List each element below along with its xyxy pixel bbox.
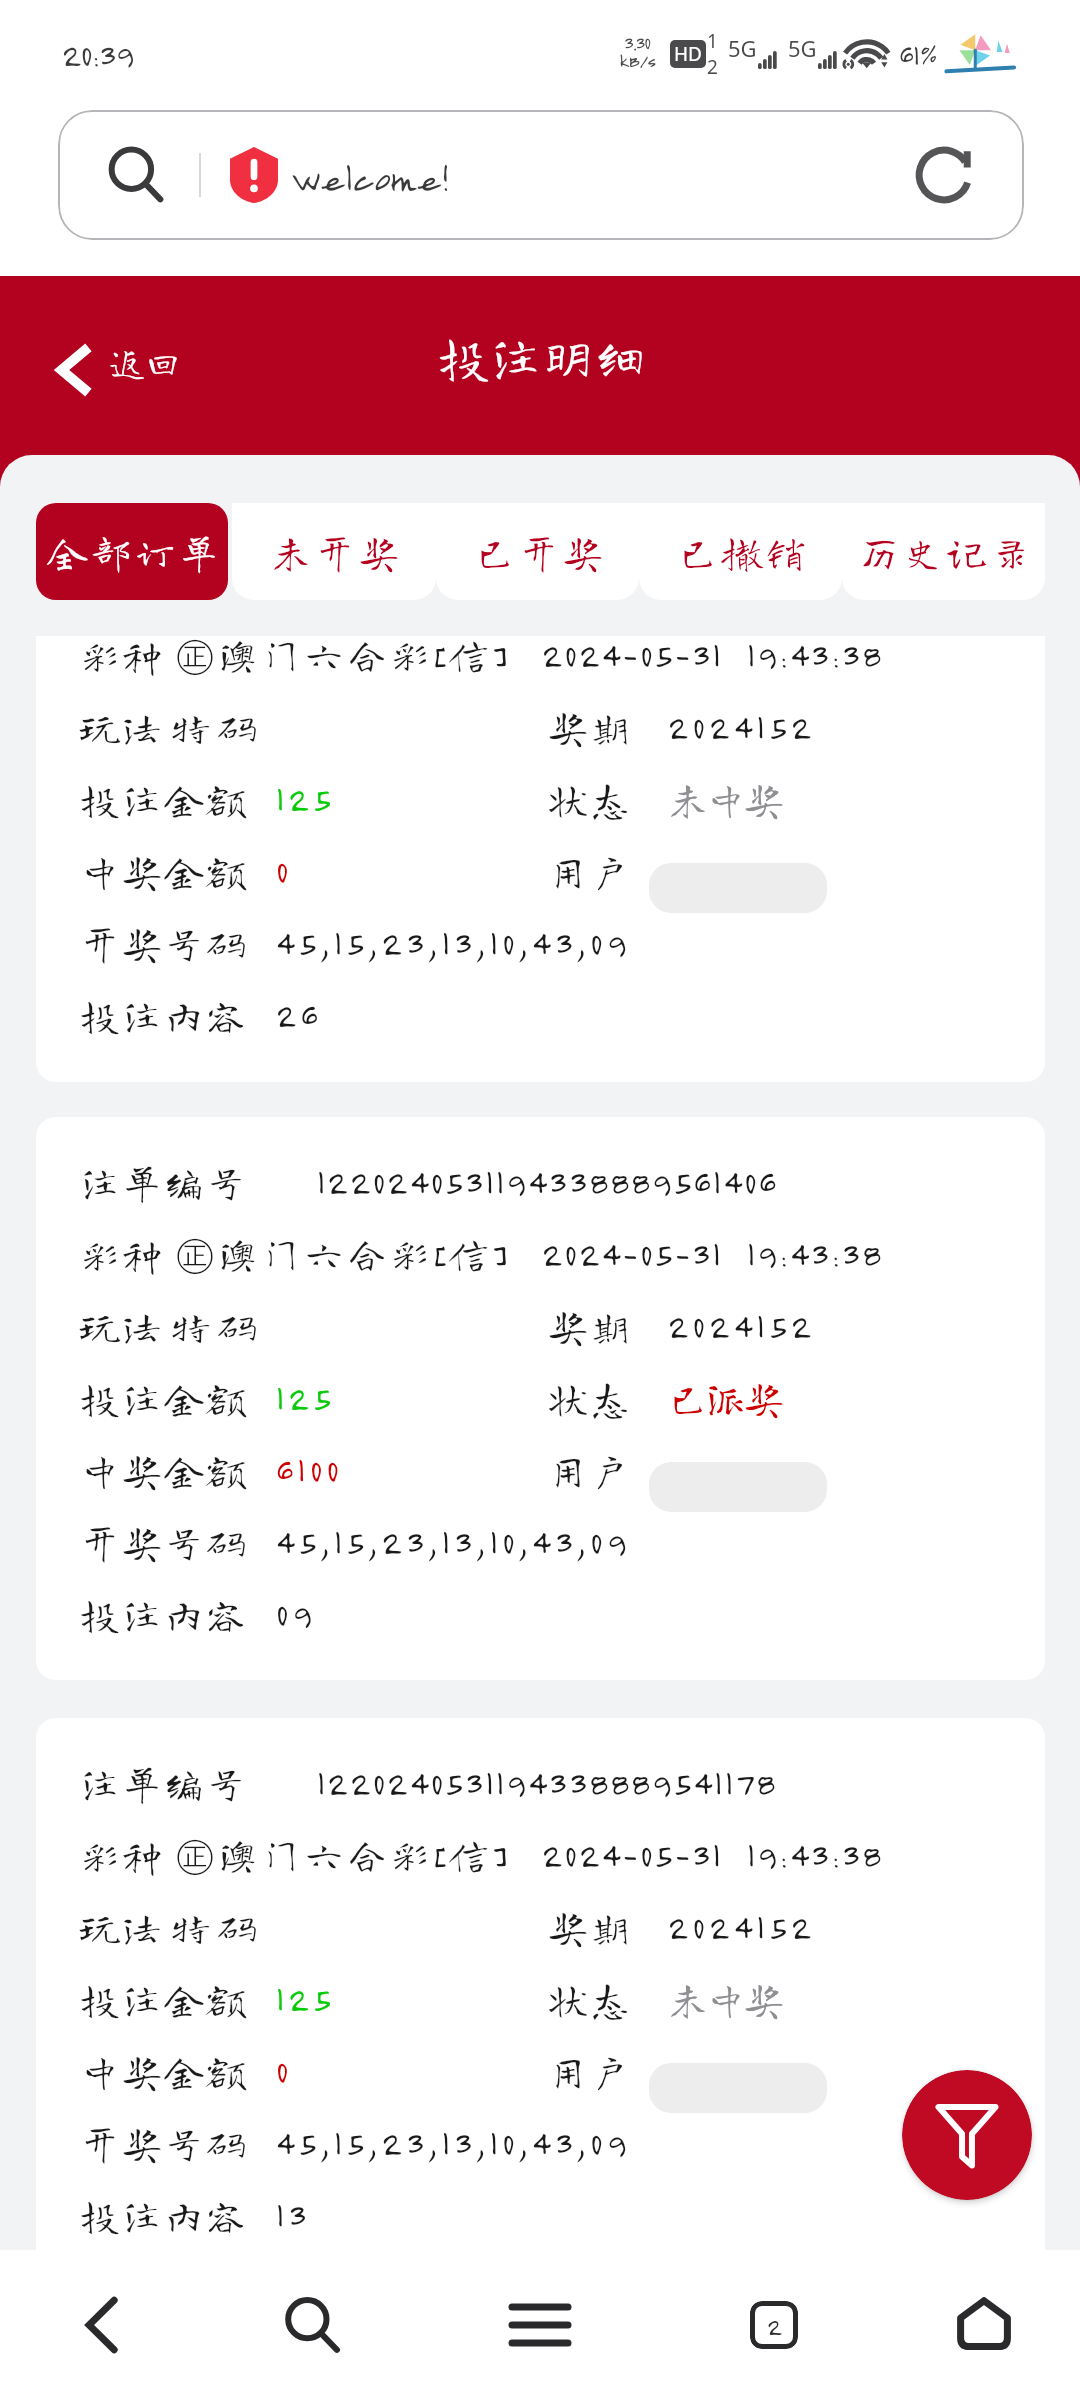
- staticText: 开奖号码: [80, 2123, 248, 2163]
- staticText: 2: [767, 2311, 781, 2341]
- button[interactable]: 返回: [43, 324, 198, 396]
- staticText: 0: [276, 2051, 293, 2091]
- staticText: 返回: [109, 344, 182, 380]
- staticText: 开奖号码: [80, 923, 248, 963]
- staticText: 注单编号: [80, 1763, 248, 1803]
- staticText: 特码: [171, 707, 263, 747]
- staticText: 注单编号: [80, 1162, 248, 1202]
- staticText: 2024152: [668, 1306, 816, 1346]
- staticText: ㊣澳门六合彩[信]: [175, 1830, 509, 1880]
- staticText: 已派奖: [668, 1378, 782, 1418]
- staticText: welcome!: [291, 155, 448, 199]
- staticText: 未开奖: [271, 532, 403, 572]
- button[interactable]: Search: [100, 139, 172, 211]
- button[interactable]: 未开奖: [232, 503, 436, 600]
- staticText: 玩法: [80, 1907, 164, 1947]
- staticText: 投注明细: [438, 330, 647, 382]
- staticText: 61%: [899, 37, 937, 71]
- staticText: 彩种: [80, 1835, 164, 1875]
- staticText: 2024-05-31 19:43:38: [542, 1835, 884, 1875]
- staticText: 已开奖: [475, 532, 607, 572]
- button[interactable]: 已开奖: [436, 503, 639, 600]
- staticText: 未中奖: [668, 779, 782, 819]
- button[interactable]: 历史记录: [842, 503, 1045, 600]
- staticText: 状态: [548, 1378, 632, 1418]
- staticText: 奖期: [548, 707, 632, 747]
- staticText: HD: [674, 41, 702, 67]
- button[interactable]: 注单编号: [36, 1117, 1045, 1680]
- staticText: 1220240531194338889541178: [317, 1763, 778, 1803]
- staticText: 已撤销: [678, 532, 810, 572]
- staticText: ㊣澳门六合彩[信]: [175, 1229, 509, 1279]
- staticText: 用户: [548, 1450, 632, 1490]
- staticText: 中奖金额: [80, 1450, 248, 1490]
- staticText: 1: [707, 28, 718, 54]
- staticText: 全部订单: [47, 532, 223, 572]
- staticText: 彩种: [80, 636, 164, 675]
- staticText: 玩法: [80, 1306, 164, 1346]
- staticText: 5G: [788, 33, 817, 63]
- button[interactable]: Tabs: [648, 2250, 864, 2400]
- button[interactable]: Menu: [432, 2250, 648, 2400]
- staticText: 2024152: [668, 707, 816, 747]
- staticText: 用户: [548, 851, 632, 891]
- staticText: 中奖金额: [80, 2051, 248, 2091]
- staticText: 2024-05-31 19:43:38: [542, 636, 884, 675]
- staticText: 开奖号码: [80, 1522, 248, 1562]
- staticText: 45,15,23,13,10,43,09: [276, 923, 631, 963]
- staticText: 投注内容: [80, 995, 248, 1035]
- button[interactable]: 已撤销: [639, 503, 842, 600]
- staticText: 0: [276, 851, 293, 891]
- staticText: 13: [276, 2195, 311, 2235]
- staticText: 历史记录: [859, 532, 1035, 572]
- button[interactable]: 彩种: [36, 636, 1045, 1082]
- button[interactable]: 注单编号: [36, 1718, 1045, 2250]
- staticText: kB/s: [619, 50, 656, 72]
- staticText: 状态: [548, 779, 632, 819]
- staticText: 125: [276, 779, 336, 819]
- staticText: 26: [276, 995, 322, 1035]
- staticText: 用户: [548, 2051, 632, 2091]
- staticText: 2024152: [668, 1907, 816, 1947]
- button[interactable]: Home: [864, 2250, 1080, 2400]
- staticText: 特码: [171, 1306, 263, 1346]
- staticText: 2024-05-31 19:43:38: [542, 1234, 884, 1274]
- staticText: 45,15,23,13,10,43,09: [276, 2123, 631, 2163]
- staticText: 未中奖: [668, 1979, 782, 2019]
- staticText: 6100: [276, 1450, 344, 1490]
- staticText: 投注金额: [80, 1979, 248, 2019]
- button[interactable]: Refresh: [906, 137, 982, 213]
- staticText: 彩种: [80, 1234, 164, 1274]
- button[interactable]: 全部订单: [36, 503, 228, 600]
- staticText: 投注内容: [80, 2195, 248, 2235]
- button[interactable]: Filter: [902, 2070, 1032, 2200]
- staticText: 20:39: [62, 36, 134, 74]
- staticText: 3.30: [624, 32, 651, 54]
- staticText: 投注金额: [80, 779, 248, 819]
- staticText: 投注内容: [80, 1594, 248, 1634]
- staticText: 125: [276, 1979, 336, 2019]
- staticText: 1220240531194338889561406: [317, 1162, 779, 1202]
- button[interactable]: Search: [216, 2250, 432, 2400]
- staticText: 投注金额: [80, 1378, 248, 1418]
- staticText: 奖期: [548, 1306, 632, 1346]
- staticText: 玩法: [80, 707, 164, 747]
- staticText: 中奖金额: [80, 851, 248, 891]
- staticText: 45,15,23,13,10,43,09: [276, 1522, 631, 1562]
- staticText: 09: [276, 1594, 317, 1634]
- staticText: 125: [276, 1378, 336, 1418]
- button[interactable]: Search: [58, 110, 1024, 240]
- staticText: 状态: [548, 1979, 632, 2019]
- staticText: 特码: [171, 1907, 263, 1947]
- button[interactable]: Back: [0, 2250, 216, 2400]
- staticText: ㊣澳门六合彩[信]: [175, 636, 509, 680]
- staticText: 5G: [728, 33, 757, 63]
- staticText: 奖期: [548, 1907, 632, 1947]
- staticText: 2: [707, 54, 718, 80]
